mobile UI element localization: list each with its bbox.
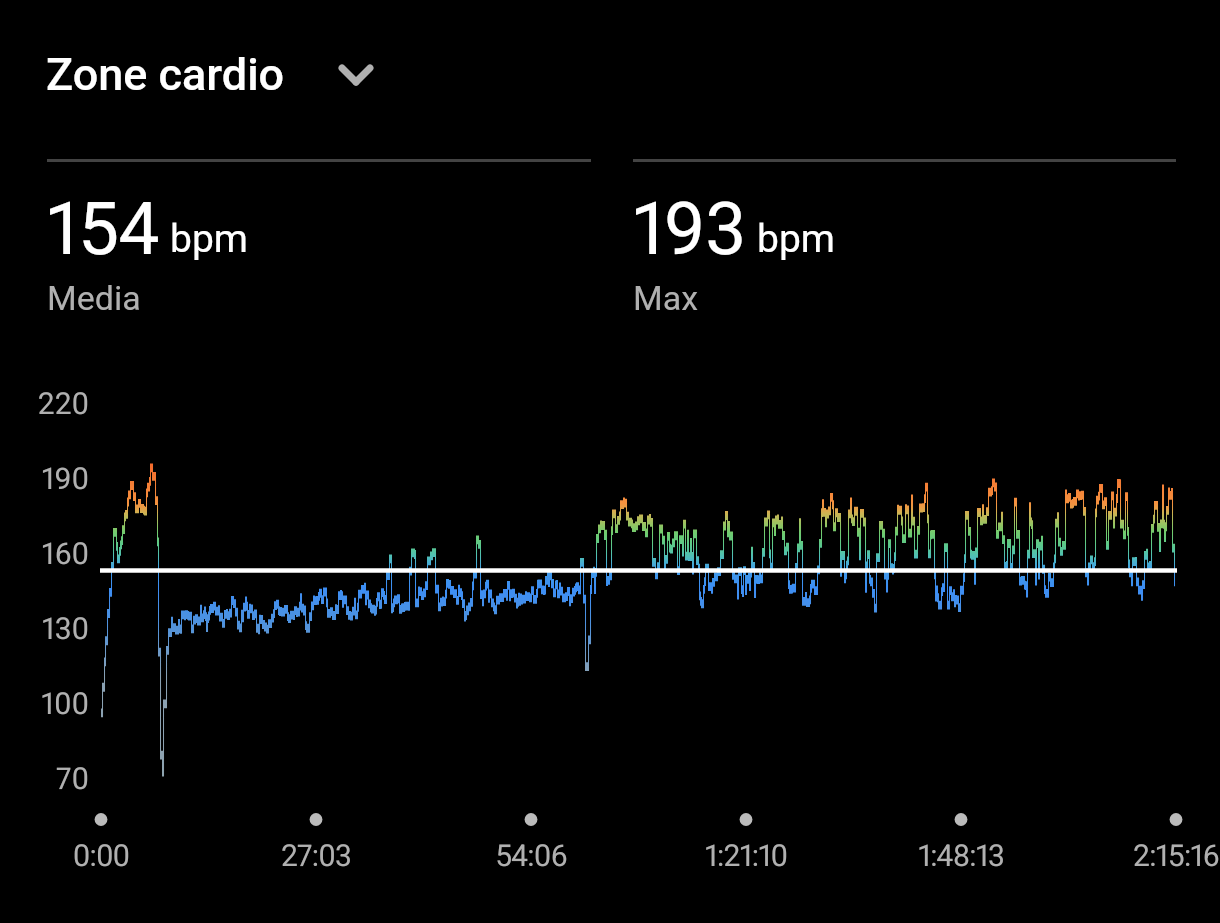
staticText: 160 (1, 536, 89, 571)
staticText: 100 (1, 686, 89, 721)
staticText: 130 (1, 611, 89, 646)
staticText: Max (633, 278, 699, 318)
other: Expand (328, 46, 384, 102)
staticText: Media (47, 278, 141, 318)
button[interactable]: Zone cardio (40, 46, 384, 102)
staticText: 193 (633, 186, 746, 272)
staticText: 190 (1, 461, 89, 496)
staticText: Zone cardio (46, 48, 285, 101)
staticText: 1:21:10 (646, 838, 846, 873)
staticText: 70 (1, 761, 89, 796)
staticText: bpm (757, 216, 835, 262)
staticText: 154 (47, 186, 159, 272)
staticText: 27:03 (216, 838, 416, 873)
staticText: 2:15:16 (1076, 838, 1220, 873)
staticText: 220 (1, 386, 89, 421)
staticText: 54:06 (431, 838, 631, 873)
staticText: bpm (170, 216, 248, 262)
staticText: 0:00 (1, 838, 201, 873)
staticText: 1:48:13 (861, 838, 1061, 873)
